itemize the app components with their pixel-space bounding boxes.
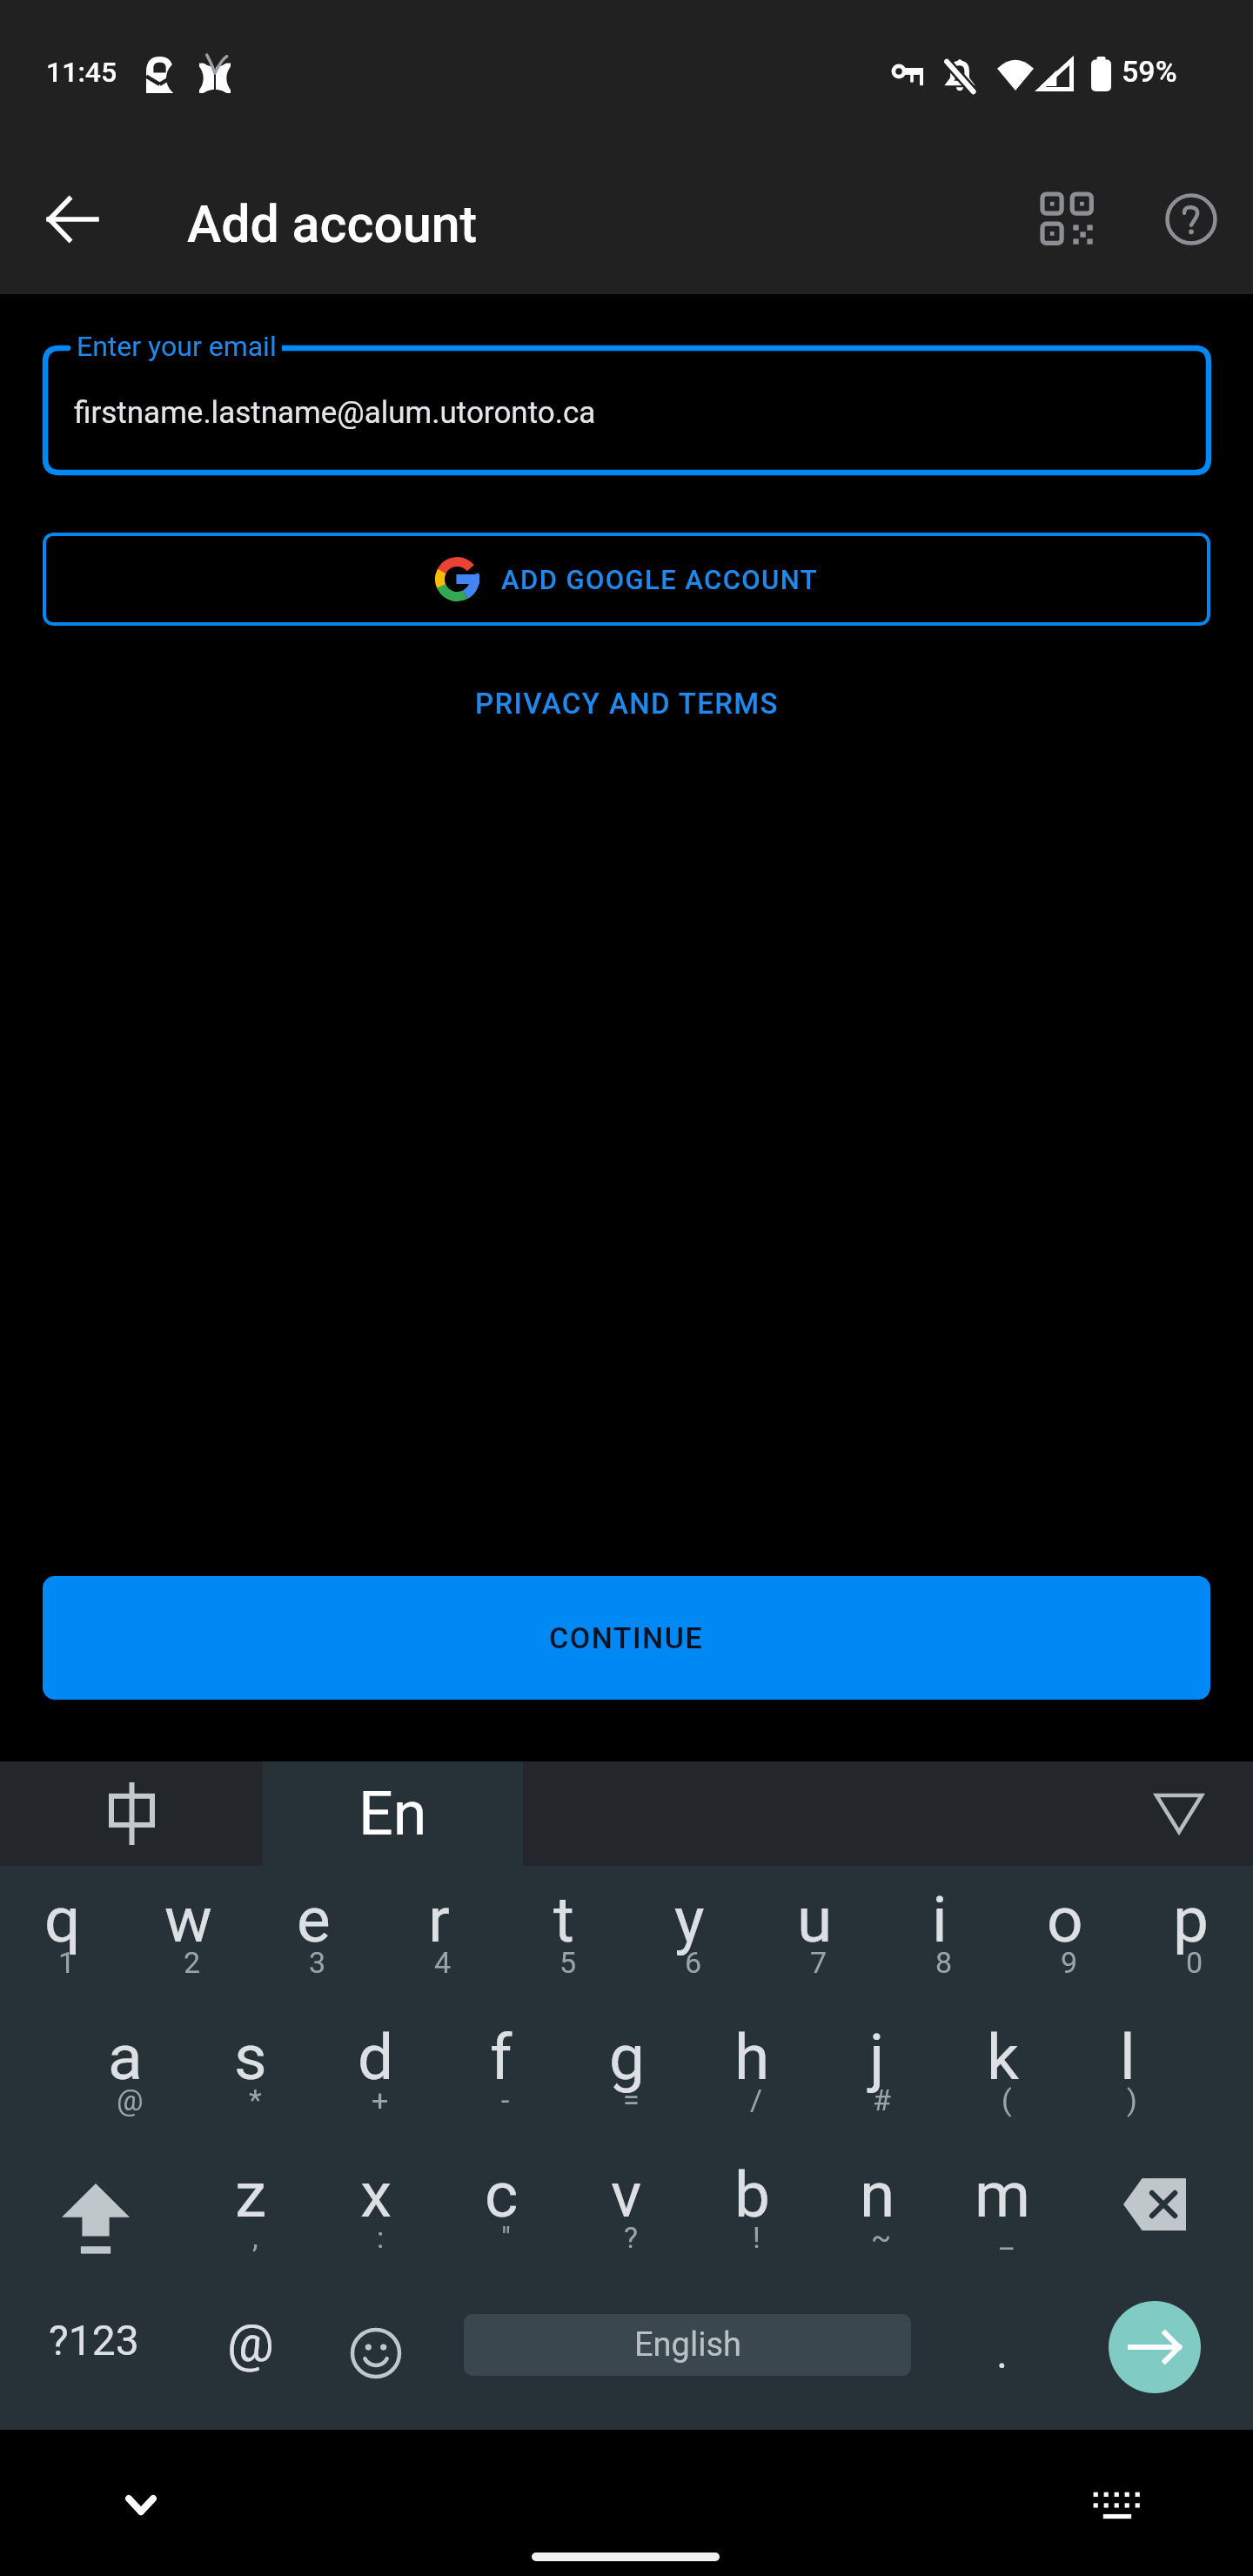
staticText: 1 [58, 1945, 76, 1980]
staticText: n [860, 2157, 895, 2232]
button[interactable]: w [125, 1866, 251, 2003]
staticText: u [797, 1882, 833, 1957]
staticText: h [734, 2020, 770, 2095]
staticText: firstname.lastname@alum.utoronto.ca [74, 395, 596, 431]
staticText: : [377, 2220, 385, 2255]
staticText: a [108, 2020, 143, 2095]
staticText: Enter your email [77, 330, 277, 363]
staticText: 9 [1061, 1945, 1078, 1980]
button[interactable]: u [752, 1866, 877, 2003]
button[interactable]: a [63, 2003, 188, 2141]
button[interactable]: ADD GOOGLE ACCOUNT [43, 533, 1210, 626]
staticText: @ [117, 2083, 144, 2117]
staticText: 4 [434, 1945, 452, 1980]
staticText: p [1173, 1882, 1209, 1957]
staticText: w [164, 1882, 212, 1957]
staticText: - [501, 2083, 510, 2117]
button[interactable]: g [564, 2003, 689, 2141]
staticText: * [249, 2083, 262, 2117]
button[interactable]: c [439, 2141, 564, 2278]
staticText: 7 [810, 1945, 828, 1980]
button[interactable]: l [1065, 2003, 1190, 2141]
button[interactable]: y [626, 1866, 752, 2003]
button[interactable]: r [376, 1866, 501, 2003]
staticText: = [623, 2083, 640, 2117]
staticText: 59% [1122, 54, 1177, 89]
staticText: # [873, 2083, 891, 2117]
button[interactable]: k [940, 2003, 1065, 2141]
button[interactable]: Help [1149, 178, 1233, 261]
staticText: ! [753, 2220, 761, 2255]
button[interactable]: j [814, 2003, 940, 2141]
button[interactable]: Collapse keyboard [1105, 1761, 1253, 1866]
staticText: 0 [1186, 1945, 1203, 1980]
button[interactable]: ?123 [0, 2265, 188, 2415]
staticText: o [1047, 1882, 1083, 1957]
button[interactable]: En [263, 1761, 523, 1866]
staticText: " [501, 2220, 511, 2255]
staticText: t [553, 1882, 574, 1957]
button[interactable]: Enter [1065, 2278, 1253, 2428]
button[interactable]: @ [188, 2268, 313, 2418]
button[interactable]: Hide keyboard [92, 2461, 179, 2548]
button[interactable]: x [313, 2141, 439, 2278]
button[interactable]: h [689, 2003, 814, 2141]
staticText: 11:45 [46, 56, 117, 89]
staticText: s [234, 2020, 267, 2095]
staticText: j [869, 2020, 885, 2095]
staticText: PRIVACY AND TERMS [475, 687, 779, 721]
staticText: 6 [685, 1945, 702, 1980]
button[interactable]: q [0, 1866, 125, 2003]
button[interactable]: Back [30, 178, 114, 261]
button[interactable]: b [689, 2141, 814, 2278]
staticText: 2 [184, 1945, 201, 1980]
staticText: ? [624, 2220, 639, 2255]
staticText: ~ [871, 2220, 892, 2255]
button[interactable]: PRIVACY AND TERMS [452, 671, 801, 736]
button[interactable]: . [940, 2278, 1065, 2428]
staticText: 8 [935, 1945, 953, 1980]
button[interactable]: Scan QR code [1026, 178, 1109, 261]
button[interactable]: v [564, 2141, 689, 2278]
staticText: . [996, 2328, 1008, 2379]
staticText: 5 [559, 1945, 577, 1980]
button[interactable]: s [188, 2003, 313, 2141]
button[interactable]: i [877, 1866, 1002, 2003]
staticText: c [485, 2157, 519, 2232]
staticText: Add account [187, 194, 478, 254]
button[interactable]: firstname.lastname@alum.utoronto.ca [45, 348, 1209, 473]
button[interactable]: t [501, 1866, 626, 2003]
button[interactable]: o [1002, 1866, 1128, 2003]
staticText: d [358, 2020, 394, 2095]
staticText: y [674, 1882, 705, 1957]
staticText: x [360, 2157, 392, 2232]
staticText: En [358, 1778, 427, 1849]
button[interactable]: p [1128, 1866, 1253, 2003]
button[interactable]: d [313, 2003, 439, 2141]
staticText: g [609, 2020, 645, 2095]
staticText: i [932, 1882, 948, 1957]
button[interactable]: m [940, 2141, 1065, 2278]
staticText: m [975, 2157, 1031, 2232]
staticText: k [987, 2020, 1019, 2095]
button[interactable]: f [439, 2003, 564, 2141]
staticText: v [611, 2157, 642, 2232]
button[interactable]: e [251, 1866, 376, 2003]
staticText: r [428, 1882, 450, 1957]
staticText: z [235, 2157, 267, 2232]
staticText: q [44, 1882, 81, 1957]
button[interactable]: n [814, 2141, 940, 2278]
staticText: ) [1127, 2083, 1137, 2117]
button[interactable]: English [464, 2314, 911, 2376]
button[interactable]: CONTINUE [43, 1576, 1210, 1700]
button[interactable]: Switch keyboard [1074, 2461, 1161, 2548]
button[interactable]: z [188, 2141, 313, 2278]
staticText: @ [227, 2312, 274, 2373]
staticText: ?123 [49, 2316, 139, 2365]
button[interactable]: Chinese input [0, 1761, 263, 1866]
button[interactable]: Emoji [313, 2278, 439, 2428]
button[interactable]: Shift [0, 2141, 188, 2278]
staticText: e [297, 1882, 331, 1957]
button[interactable]: Backspace [1065, 2141, 1253, 2278]
staticText: _ [1000, 2220, 1014, 2255]
